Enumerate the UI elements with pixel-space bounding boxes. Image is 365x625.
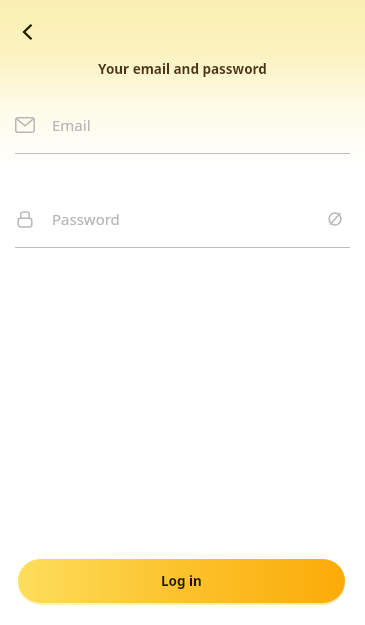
button[interactable]: Back (8, 12, 48, 52)
other: Email (15, 115, 52, 135)
button[interactable]: Password (15, 200, 350, 248)
staticText: Log in (161, 572, 202, 590)
button[interactable]: Email (15, 106, 350, 154)
button[interactable]: Show password (320, 204, 350, 234)
other: Password (15, 209, 52, 229)
staticText: Your email and password (98, 60, 267, 78)
staticText: Email (52, 115, 91, 135)
button[interactable]: Log in (18, 559, 345, 603)
staticText: Password (52, 209, 120, 229)
